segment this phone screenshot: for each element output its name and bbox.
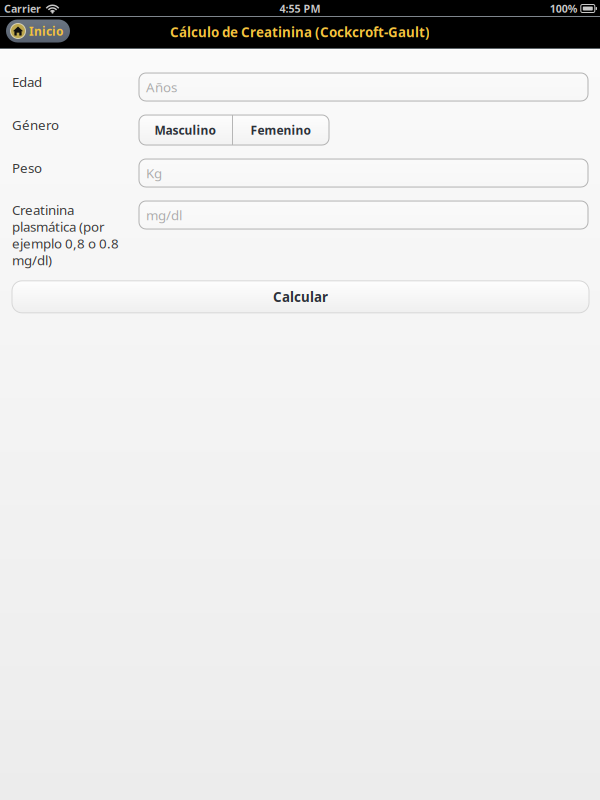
button[interactable]: Inicio (6, 19, 70, 42)
staticText: Inicio (29, 23, 64, 39)
staticText: Calcular (273, 288, 328, 306)
staticText: Género (12, 116, 59, 134)
staticText: Cálculo de Creatinina (Cockcroft-Gault) (170, 23, 430, 41)
staticText: mg/dl (146, 206, 182, 224)
staticText: mg/dl) (12, 251, 52, 269)
staticText: Carrier (4, 1, 41, 16)
staticText: Años (146, 78, 177, 96)
staticText: Kg (146, 164, 162, 182)
staticText: 100% (550, 1, 578, 16)
staticText: ejemplo 0,8 o 0.8 (12, 234, 119, 252)
button[interactable]: Femenino (233, 115, 329, 145)
button[interactable]: Calcular (12, 281, 589, 313)
staticText: plasmática (por (12, 218, 105, 235)
staticText: Masculino (154, 122, 216, 138)
button[interactable]: Masculino (139, 115, 232, 145)
staticText: Creatinina (12, 201, 74, 219)
staticText: 4:55 PM (279, 1, 320, 16)
staticText: Edad (12, 73, 42, 91)
staticText: Peso (12, 159, 42, 177)
staticText: Femenino (250, 122, 311, 138)
